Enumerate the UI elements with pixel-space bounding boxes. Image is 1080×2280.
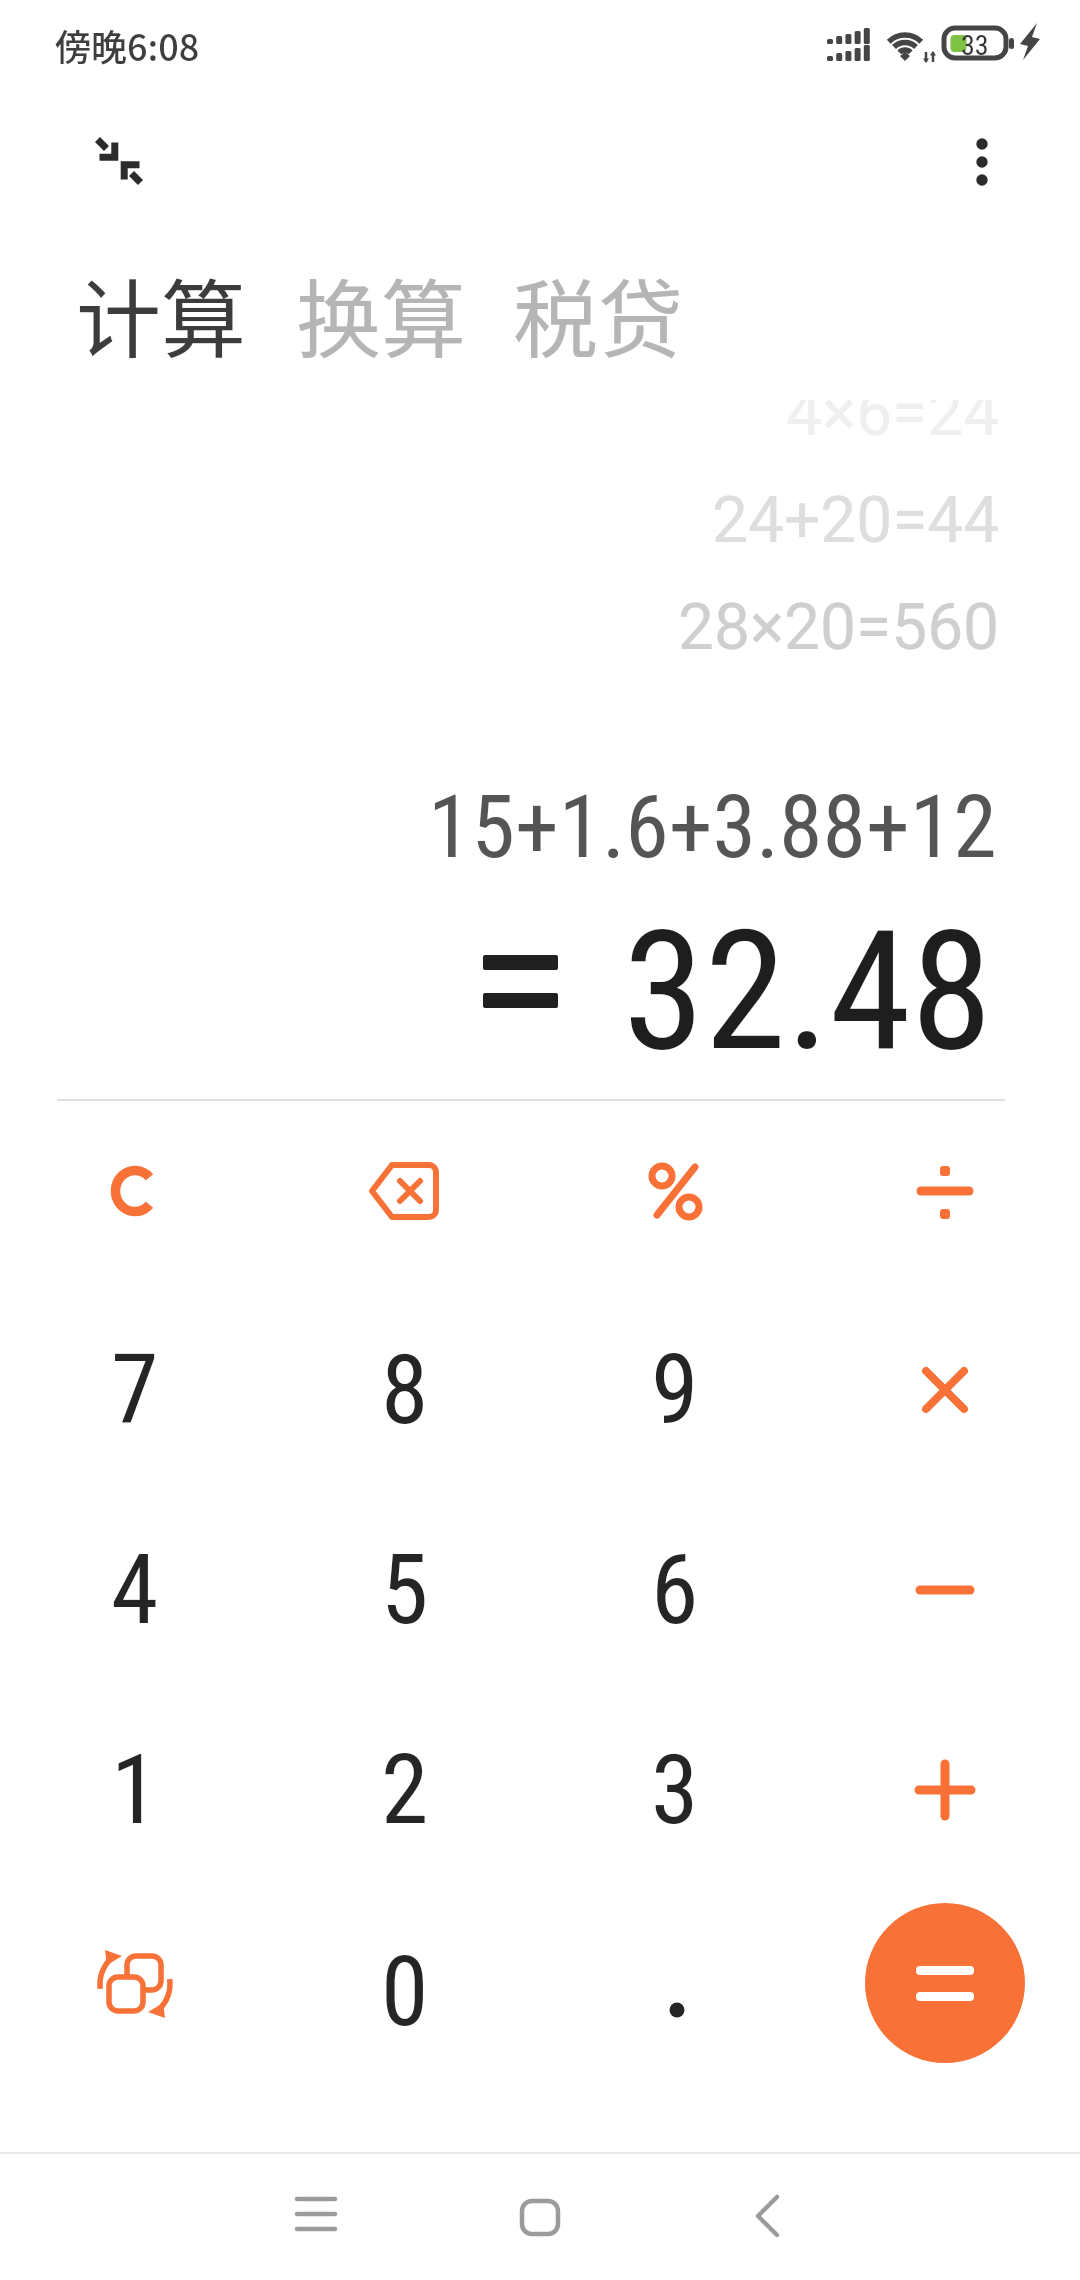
button[interactable]: 3 [540,1720,810,1860]
button[interactable]: 8 [270,1320,540,1460]
staticText: 15+1.6+3.88+12 [428,775,997,878]
button[interactable] [865,1903,1025,2063]
staticText: 1 [111,1734,159,1847]
button[interactable] [810,1520,1080,1660]
button[interactable]: 9 [540,1320,810,1460]
button[interactable] [0,1121,270,1261]
button[interactable]: 7 [0,1320,270,1460]
staticText: 28×20=560 [678,590,1000,665]
staticText: 8 [381,1334,429,1447]
button[interactable] [540,1914,810,2054]
button[interactable] [226,2160,406,2280]
staticText: 9 [651,1334,699,1447]
button[interactable] [270,1121,540,1261]
staticText: 6 [651,1534,699,1647]
staticText: 3 [651,1734,699,1847]
staticText: 5 [381,1534,429,1647]
staticText: 24+20=44 [712,483,1000,558]
button[interactable]: 2 [270,1720,540,1860]
staticText: 7 [111,1334,159,1447]
button[interactable] [75,115,165,205]
button[interactable] [674,2160,854,2280]
button[interactable] [0,1914,270,2054]
button[interactable]: 5 [270,1520,540,1660]
button[interactable]: 0 [270,1922,540,2062]
button[interactable] [810,1320,1080,1460]
button[interactable]: 4 [0,1520,270,1660]
button[interactable]: 计算 [76,252,247,375]
staticText: 33 [961,29,989,62]
button[interactable]: 换算 [296,252,467,375]
staticText: 2 [381,1734,429,1847]
staticText: 4 [111,1534,159,1647]
button[interactable]: 6 [540,1520,810,1660]
button[interactable] [810,1720,1080,1860]
staticText: 32.48 [623,895,993,1088]
button[interactable] [540,1121,810,1261]
button[interactable]: 税贷 [513,252,684,375]
button[interactable] [450,2160,630,2280]
staticText: 傍晚6:08 [55,19,200,71]
staticText: 0 [381,1936,429,2049]
staticText: 4×6=24 [786,400,1000,451]
button[interactable]: 1 [0,1720,270,1860]
button[interactable] [945,110,1020,210]
button[interactable] [810,1121,1080,1261]
